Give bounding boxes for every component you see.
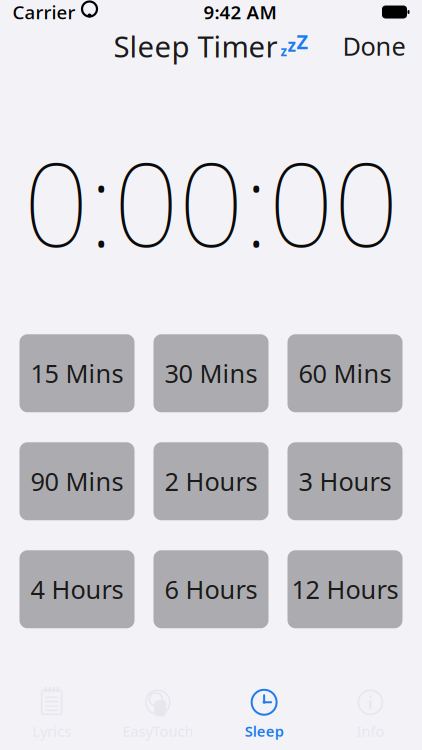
button[interactable]: 90 Mins: [19, 442, 134, 520]
staticText: Z: [296, 28, 308, 55]
button[interactable]: 12 Hours: [287, 550, 402, 628]
staticText: Lyrics: [32, 721, 71, 741]
staticText: Carrier: [12, 0, 75, 24]
staticText: 12 Hours: [291, 572, 398, 606]
button[interactable]: 6 Hours: [153, 550, 268, 628]
staticText: 4 Hours: [30, 572, 123, 606]
staticText: Info: [356, 721, 384, 741]
button[interactable]: 3 Hours: [287, 442, 402, 520]
staticText: Done: [342, 29, 405, 63]
staticText: z: [280, 42, 287, 60]
button[interactable]: 60 Mins: [287, 334, 402, 412]
button[interactable]: 4 Hours: [19, 550, 134, 628]
button[interactable]: Done: [332, 21, 415, 71]
staticText: Sleep: [245, 721, 284, 741]
staticText: 9:42 AM: [203, 0, 276, 24]
staticText: 0:00:00: [23, 126, 398, 278]
staticText: 2 Hours: [164, 464, 257, 498]
staticText: EasyTouch: [122, 721, 193, 741]
staticText: 3 Hours: [298, 464, 391, 498]
staticText: Sleep Timer: [113, 26, 277, 65]
staticText: 90 Mins: [30, 464, 123, 498]
button[interactable]: 15 Mins: [19, 334, 134, 412]
button[interactable]: 30 Mins: [153, 334, 268, 412]
staticText: 15 Mins: [30, 356, 123, 390]
staticText: 60 Mins: [298, 356, 391, 390]
staticText: 6 Hours: [164, 572, 257, 606]
staticText: z: [287, 33, 296, 56]
button[interactable]: 2 Hours: [153, 442, 268, 520]
button[interactable]: Sleep: [211, 684, 317, 744]
staticText: 30 Mins: [164, 356, 257, 390]
